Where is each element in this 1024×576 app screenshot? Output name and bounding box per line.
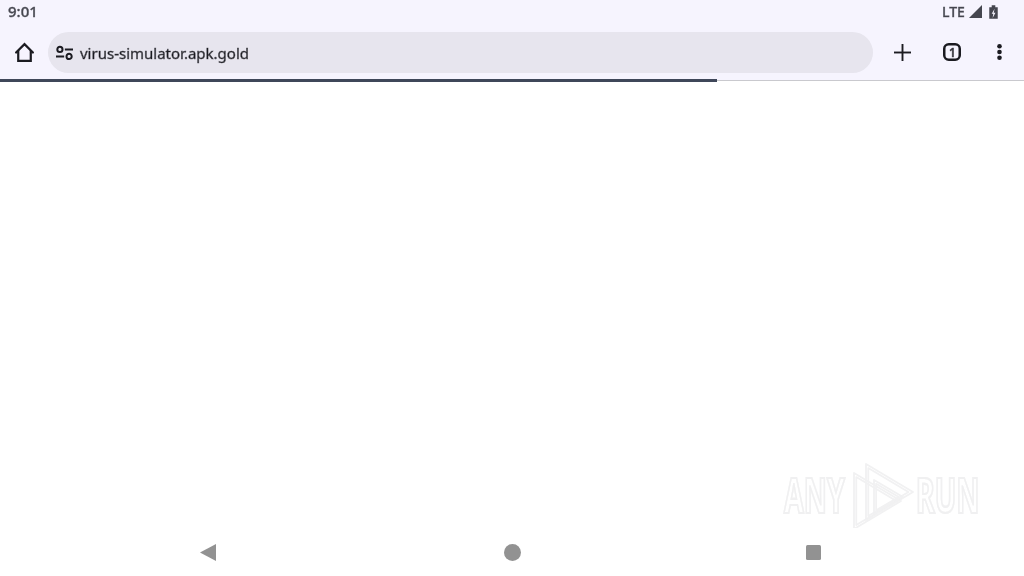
staticText: virus-simulator.apk.gold (80, 43, 249, 63)
button[interactable]: Home (464, 528, 560, 576)
staticText: 1 (949, 44, 956, 60)
button[interactable]: More options (975, 28, 1023, 76)
staticText: 9:01 (8, 1, 38, 21)
staticText: 1 (949, 44, 956, 60)
staticText: RUN (916, 461, 980, 528)
button[interactable]: virus-simulator.apk.gold (48, 32, 873, 73)
staticText: ANY (784, 461, 845, 528)
button[interactable]: Recent apps (765, 528, 861, 576)
staticText: LTE (942, 2, 965, 21)
button[interactable]: Back (160, 528, 256, 576)
staticText: 9:01 (8, 1, 38, 21)
button[interactable]: New tab (878, 28, 926, 76)
button[interactable]: Switch tabs (928, 28, 976, 76)
button[interactable]: Home (0, 28, 48, 76)
staticText: LTE (942, 2, 965, 21)
staticText: virus-simulator.apk.gold (80, 43, 249, 63)
